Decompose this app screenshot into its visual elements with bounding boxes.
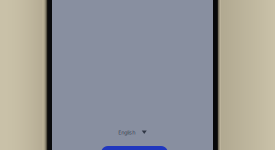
button[interactable]: English xyxy=(118,129,147,136)
staticText: English xyxy=(118,129,135,136)
button[interactable]: Get started xyxy=(101,146,168,150)
